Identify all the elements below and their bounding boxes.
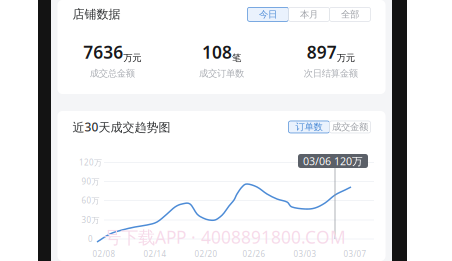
staticText: 03/03 [293,249,316,259]
staticText: 0 [88,234,93,244]
staticText: 万元 [337,52,355,64]
staticText: 成交订单数 [199,67,244,79]
staticText: 次日结算金额 [304,67,358,79]
staticText: 02/26 [242,249,265,259]
staticText: 成交金额 [332,121,368,133]
staticText: 02/14 [143,249,166,259]
staticText: 店铺数据 [72,7,120,22]
staticText: 订单数 [295,121,322,133]
staticText: 成交总金额 [90,67,135,79]
staticText: 今日 [259,9,277,20]
staticText: 03/07 [343,249,366,259]
staticText: 02/20 [194,249,217,259]
staticText: 897 [307,40,337,63]
staticText: 本月 [300,9,318,20]
staticText: 全部 [341,9,359,20]
button[interactable]: 订单数 [288,121,329,133]
staticText: 近30天成交趋势图 [72,119,170,135]
staticText: 60万 [81,195,99,206]
button[interactable]: 今日 [247,7,288,21]
staticText: 30万 [81,215,99,225]
staticText: 90万 [81,176,99,187]
staticText: 7636 [83,40,123,63]
staticText: 号下载APP · 4008891800.COM [104,225,346,248]
button[interactable]: 本月 [288,7,329,21]
staticText: 笔 [232,52,241,64]
staticText: 03/06 120万 [303,154,363,168]
staticText: 120万 [79,157,102,168]
button[interactable]: 成交金额 [329,121,370,133]
staticText: 万元 [123,52,141,64]
staticText: 02/08 [92,249,115,259]
button[interactable]: 全部 [329,7,370,21]
staticText: 108 [202,40,232,63]
